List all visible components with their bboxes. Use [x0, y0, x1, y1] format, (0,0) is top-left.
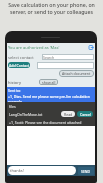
staticText: SEND — [81, 169, 91, 174]
staticText: Search — [43, 55, 55, 60]
staticText: thanks! — [10, 168, 24, 173]
button[interactable]: Log out — [88, 44, 94, 50]
staticText: Cancel — [80, 112, 91, 117]
button[interactable]: Read — [61, 111, 75, 117]
staticText: files — [9, 104, 16, 109]
staticText: +1, Dias. Send me please some pre-lim ca… — [8, 94, 90, 99]
button[interactable]: thanks! — [8, 166, 76, 175]
staticText: You are authorized as 'Max' — [8, 45, 60, 50]
staticText: Attach document — [62, 71, 91, 76]
button[interactable]: SEND — [78, 167, 94, 175]
staticText: Read — [64, 112, 73, 117]
staticText: server, or send to your colleagues — [0, 8, 103, 15]
button[interactable]: Cancel — [77, 111, 93, 117]
button[interactable]: show all — [39, 79, 58, 85]
button[interactable]: Attach document — [59, 70, 94, 77]
staticText: +1, Scott: Please see the document attac… — [9, 120, 82, 125]
staticText: select contact — [8, 55, 34, 60]
button[interactable]: Add Contact — [8, 62, 30, 68]
staticText: Save calculation on your phone, on — [0, 1, 103, 8]
staticText: example — [8, 99, 23, 102]
staticText: Add Contact — [9, 63, 30, 68]
staticText: Sent to: — [8, 88, 21, 93]
staticText: LangOnTheMove.txt — [9, 112, 43, 117]
staticText: show all — [42, 80, 56, 85]
staticText: history — [8, 80, 21, 85]
